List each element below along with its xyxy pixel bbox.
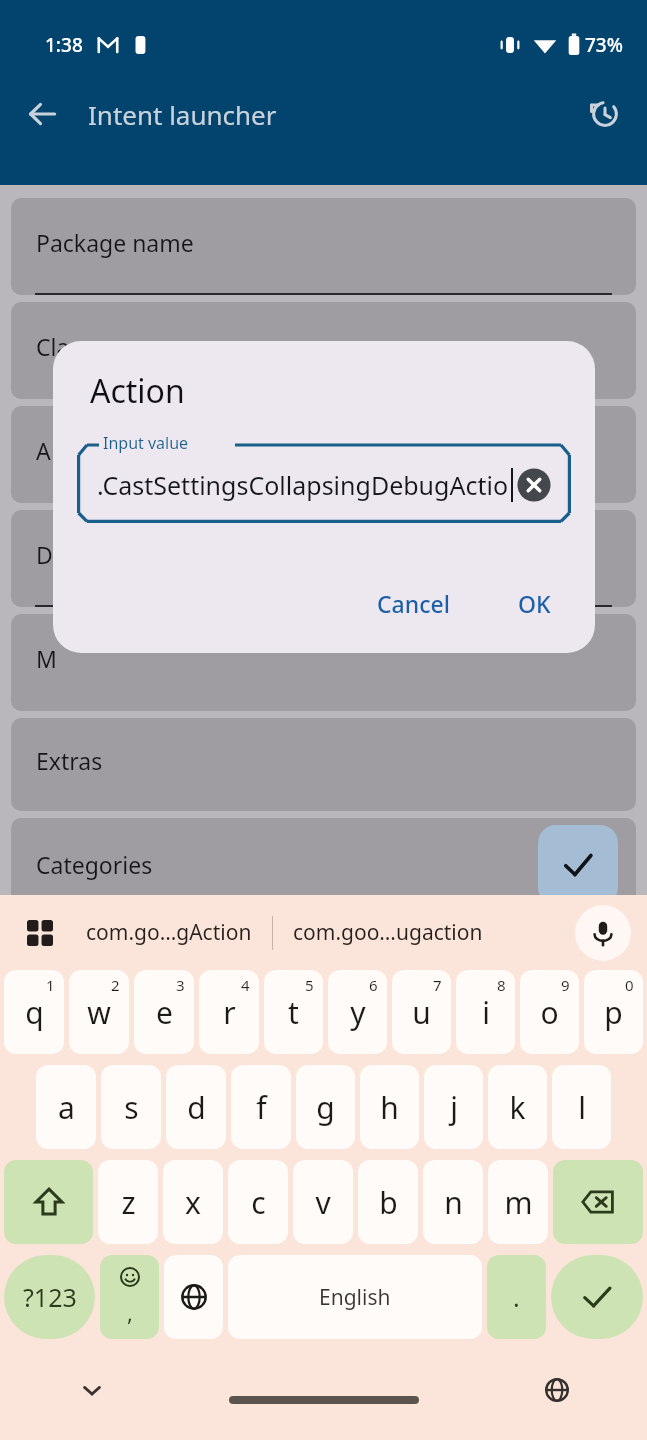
staticText: z <box>121 1182 136 1223</box>
button[interactable]: s <box>101 1065 161 1149</box>
button[interactable] <box>11 918 636 1011</box>
button[interactable]: b <box>358 1160 418 1244</box>
staticText: a <box>58 1087 75 1128</box>
staticText: . <box>513 1280 520 1314</box>
button[interactable]: ?123 <box>4 1255 95 1339</box>
staticText: t <box>288 992 299 1033</box>
button[interactable]: . <box>487 1255 546 1339</box>
button[interactable]: Change language <box>164 1255 223 1339</box>
staticText: m <box>504 1182 533 1223</box>
staticText: r <box>223 992 236 1033</box>
button[interactable]: m <box>488 1160 548 1244</box>
staticText: s <box>124 1087 139 1128</box>
button[interactable]: Backspace <box>553 1160 643 1244</box>
staticText: o <box>540 992 559 1033</box>
staticText: 5 <box>305 975 314 995</box>
button[interactable]: Clear text <box>513 464 555 506</box>
button[interactable]: k <box>488 1065 547 1149</box>
button[interactable]: p <box>584 970 643 1054</box>
staticText: 7 <box>433 975 442 995</box>
staticText: 1 <box>46 975 55 995</box>
button[interactable]: OK <box>502 578 567 629</box>
button[interactable]: D <box>11 510 636 607</box>
staticText: v <box>315 1182 331 1223</box>
button[interactable]: Toggle categories <box>538 825 618 905</box>
button[interactable]: Extras <box>11 718 636 811</box>
staticText: x <box>185 1182 201 1223</box>
staticText: .CastSettingsCollapsingDebugAction <box>97 468 513 502</box>
button[interactable]: English <box>228 1255 482 1339</box>
staticText: M <box>36 643 57 674</box>
staticText: Extras <box>36 745 103 776</box>
staticText: c <box>251 1182 266 1223</box>
button[interactable]: Hide keyboard <box>72 1370 112 1410</box>
button[interactable]: q <box>4 970 64 1054</box>
button[interactable]: u <box>392 970 451 1054</box>
staticText: l <box>578 1087 586 1128</box>
staticText: Class name <box>36 331 159 362</box>
button[interactable]: Class name <box>11 302 636 399</box>
staticText: com.go…gAction <box>86 918 252 947</box>
button[interactable]: Package name <box>11 198 636 295</box>
staticText: y <box>350 992 366 1033</box>
button[interactable]: t <box>264 970 323 1054</box>
staticText: 3 <box>176 975 185 995</box>
button[interactable]: x <box>163 1160 223 1244</box>
button[interactable]: Keyboard options <box>18 911 62 955</box>
button[interactable]: History <box>581 90 629 138</box>
button[interactable]: c <box>228 1160 288 1244</box>
button[interactable]: a <box>36 1065 96 1149</box>
staticText: Input value <box>103 432 189 454</box>
button[interactable]: o <box>520 970 579 1054</box>
button[interactable]: M <box>11 614 636 711</box>
staticText: i <box>482 992 490 1033</box>
button[interactable]: y <box>328 970 387 1054</box>
staticText: Intent launcher <box>88 97 277 132</box>
staticText: A <box>36 435 51 466</box>
staticText: com.goo…ugaction <box>293 918 483 947</box>
staticText: k <box>509 1087 526 1128</box>
staticText: d <box>187 1087 206 1128</box>
button[interactable]: v <box>293 1160 353 1244</box>
button[interactable]: f <box>231 1065 291 1149</box>
staticText: b <box>379 1182 398 1223</box>
button[interactable]: Enter <box>551 1255 643 1339</box>
button[interactable]: Emoji and comma <box>100 1255 159 1339</box>
button[interactable]: j <box>424 1065 483 1149</box>
staticText: w <box>87 992 111 1033</box>
button[interactable]: Categories <box>11 818 636 911</box>
staticText: Cancel <box>377 588 450 619</box>
button[interactable]: z <box>98 1160 158 1244</box>
staticText: g <box>316 1087 335 1128</box>
button[interactable]: n <box>423 1160 483 1244</box>
staticText: 4 <box>241 975 250 995</box>
button[interactable]: com.go…gAction <box>80 910 258 955</box>
button[interactable]: d <box>166 1065 226 1149</box>
button[interactable]: A <box>11 406 636 503</box>
button[interactable]: Back <box>18 90 66 138</box>
button[interactable]: Cancel <box>361 578 466 629</box>
staticText: 2 <box>111 975 120 995</box>
staticText: Package name <box>36 227 194 258</box>
staticText: 1:38 <box>45 32 83 58</box>
button[interactable]: e <box>134 970 194 1054</box>
button[interactable]: g <box>296 1065 355 1149</box>
staticText: j <box>450 1087 458 1128</box>
button[interactable]: w <box>69 970 129 1054</box>
button[interactable]: h <box>360 1065 419 1149</box>
staticText: 6 <box>369 975 378 995</box>
staticText: ?123 <box>23 1280 77 1314</box>
staticText: , <box>127 1297 133 1327</box>
staticText: 0 <box>625 975 634 995</box>
button[interactable]: com.goo…ugaction <box>287 910 489 955</box>
button[interactable]: Shift <box>4 1160 93 1244</box>
staticText: 9 <box>561 975 570 995</box>
staticText: p <box>604 992 623 1033</box>
button[interactable]: i <box>456 970 515 1054</box>
staticText: Action <box>90 369 185 413</box>
staticText: f <box>256 1087 267 1128</box>
staticText: n <box>444 1182 463 1223</box>
button[interactable]: Voice input <box>575 905 631 961</box>
button[interactable]: r <box>199 970 259 1054</box>
button[interactable]: l <box>552 1065 611 1149</box>
